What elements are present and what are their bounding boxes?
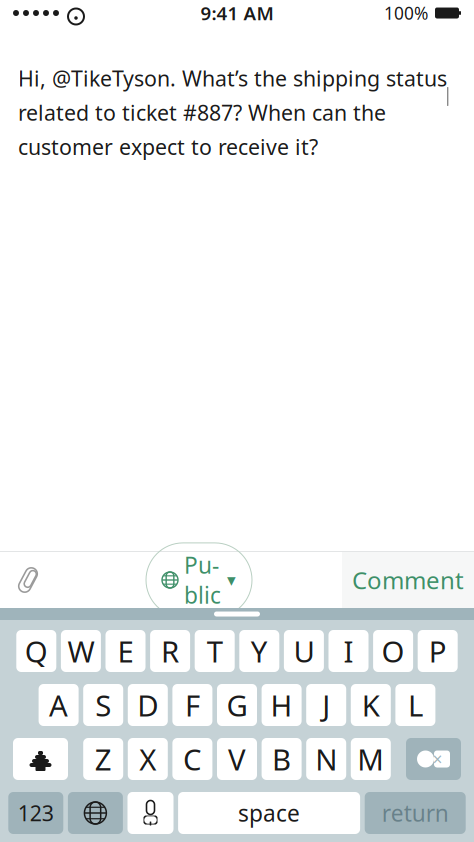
- staticText: A: [49, 685, 68, 724]
- staticText: space: [238, 798, 300, 828]
- staticText: W: [67, 631, 94, 670]
- button[interactable]: F: [172, 684, 212, 726]
- staticText: Public: [184, 550, 221, 610]
- button[interactable]: U: [284, 630, 324, 672]
- button[interactable]: B: [262, 738, 302, 780]
- button[interactable]: Z: [83, 738, 123, 780]
- staticText: D: [137, 685, 158, 724]
- staticText: G: [226, 685, 247, 724]
- button[interactable]: space: [178, 792, 360, 834]
- staticText: M: [357, 739, 384, 778]
- staticText: B: [272, 739, 291, 778]
- button[interactable]: V: [217, 738, 257, 780]
- button[interactable]: Comment: [342, 552, 474, 608]
- button[interactable]: W: [61, 630, 101, 672]
- staticText: F: [185, 685, 200, 724]
- staticText: I: [343, 631, 353, 670]
- button[interactable]: J: [306, 684, 346, 726]
- button[interactable]: L: [395, 684, 435, 726]
- staticText: Z: [95, 739, 112, 778]
- staticText: 9:41 AM: [200, 1, 273, 25]
- staticText: ×: [432, 747, 442, 770]
- button[interactable]: O: [373, 630, 413, 672]
- button[interactable]: T: [195, 630, 235, 672]
- button[interactable]: G: [217, 684, 257, 726]
- button[interactable]: Y: [239, 630, 279, 672]
- button[interactable]: S: [83, 684, 123, 726]
- staticText: P: [429, 631, 447, 670]
- staticText: H: [271, 685, 293, 724]
- button[interactable]: return: [365, 792, 466, 834]
- button[interactable]: Delete: [406, 738, 461, 780]
- staticText: Comment: [352, 564, 464, 596]
- button[interactable]: R: [150, 630, 190, 672]
- button[interactable]: I: [328, 630, 368, 672]
- staticText: return: [382, 798, 449, 828]
- staticText: V: [228, 739, 246, 778]
- staticText: X: [139, 739, 156, 778]
- staticText: J: [322, 685, 330, 724]
- button[interactable]: C: [172, 738, 212, 780]
- button[interactable]: Q: [16, 630, 56, 672]
- button[interactable]: M: [351, 738, 391, 780]
- staticText: 100%: [384, 1, 428, 24]
- button[interactable]: E: [105, 630, 145, 672]
- button[interactable]: Numbers: [8, 792, 63, 834]
- staticText: R: [161, 631, 179, 670]
- staticText: 123: [18, 799, 54, 827]
- staticText: C: [183, 739, 202, 778]
- button[interactable]: Shift: [13, 738, 68, 780]
- button[interactable]: N: [306, 738, 346, 780]
- button[interactable]: Next keyboard: [68, 792, 123, 834]
- staticText: K: [362, 685, 380, 724]
- button[interactable]: Attach file: [0, 552, 56, 608]
- button[interactable]: Dictation: [127, 792, 173, 834]
- button[interactable]: A: [39, 684, 79, 726]
- staticText: E: [117, 631, 133, 670]
- staticText: U: [293, 631, 314, 670]
- button[interactable]: D: [128, 684, 168, 726]
- staticText: O: [382, 631, 405, 670]
- staticText: Y: [251, 631, 268, 670]
- staticText: N: [315, 739, 337, 778]
- button[interactable]: K: [351, 684, 391, 726]
- button[interactable]: H: [262, 684, 302, 726]
- button[interactable]: X: [128, 738, 168, 780]
- staticText: ▾: [227, 570, 236, 590]
- staticText: T: [207, 631, 223, 670]
- staticText: L: [408, 685, 423, 724]
- button[interactable]: Public: [146, 543, 252, 617]
- button[interactable]: P: [418, 630, 458, 672]
- staticText: S: [95, 685, 111, 724]
- staticText: Hi, @TikeTyson. What’s the shipping stat…: [18, 64, 447, 161]
- staticText: Q: [25, 631, 48, 670]
